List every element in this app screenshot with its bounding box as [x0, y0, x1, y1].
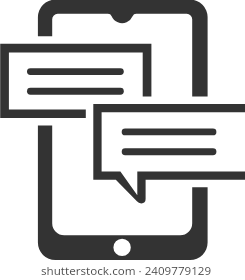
button[interactable]: Mobile phone chat messages illustration — [0, 0, 245, 280]
staticText: shutterstock.com · 2409779129 — [7, 263, 245, 279]
